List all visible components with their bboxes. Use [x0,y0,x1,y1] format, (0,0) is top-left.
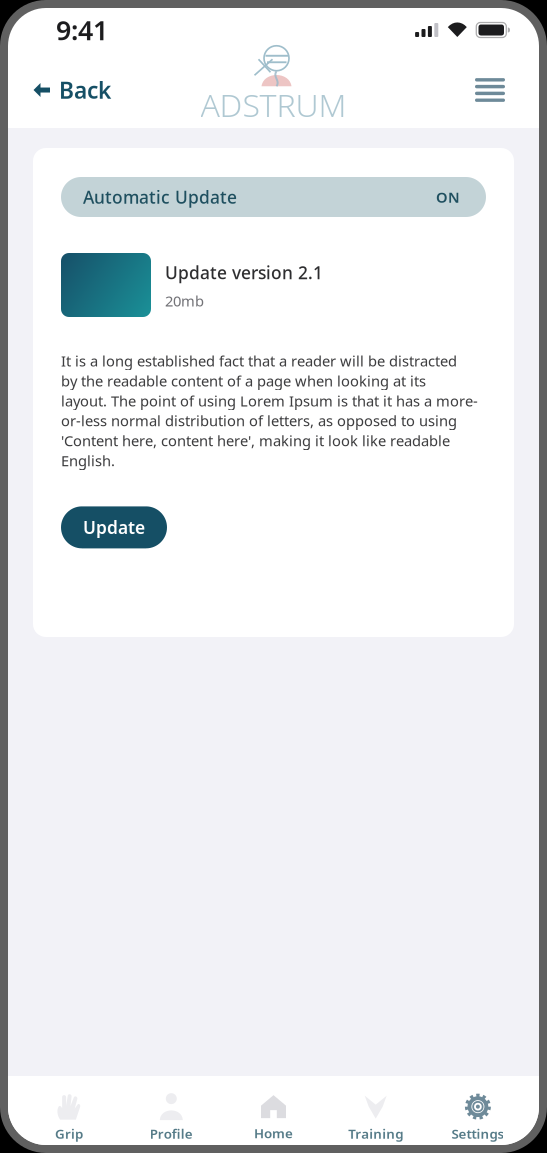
staticText: Profile [150,1125,193,1142]
button[interactable]: Profile [120,1073,222,1148]
button[interactable]: Home [222,1073,325,1148]
staticText: Automatic Update [83,185,237,208]
button[interactable]: Settings [427,1073,529,1148]
staticText: 9:41 [56,12,108,48]
button[interactable]: Back [8,69,125,111]
staticText: or-less normal distribution of letters, … [61,411,457,430]
staticText: Update [83,516,145,539]
staticText: It is a long established fact that a rea… [61,351,457,370]
staticText: 20mb [165,291,204,310]
staticText: 'Content here, content here', making it … [61,431,450,450]
button[interactable]: Automatic Update [61,177,486,217]
staticText: ADSTRUM [200,83,346,126]
button[interactable]: Update [61,506,167,548]
staticText: Home [254,1124,293,1142]
staticText: Update version 2.1 [165,261,323,284]
staticText: layout. The point of using Lorem Ipsum i… [61,391,478,410]
staticText: ON [436,187,460,207]
staticText: Back [59,75,111,105]
staticText: Settings [451,1125,504,1142]
button[interactable]: Training [325,1073,427,1148]
staticText: English. [61,451,115,470]
staticText: by the readable content of a page when l… [61,371,426,390]
button[interactable]: Menu [461,68,539,112]
staticText: Training [348,1125,403,1142]
staticText: Grip [55,1125,83,1142]
button[interactable]: Grip [18,1073,120,1148]
